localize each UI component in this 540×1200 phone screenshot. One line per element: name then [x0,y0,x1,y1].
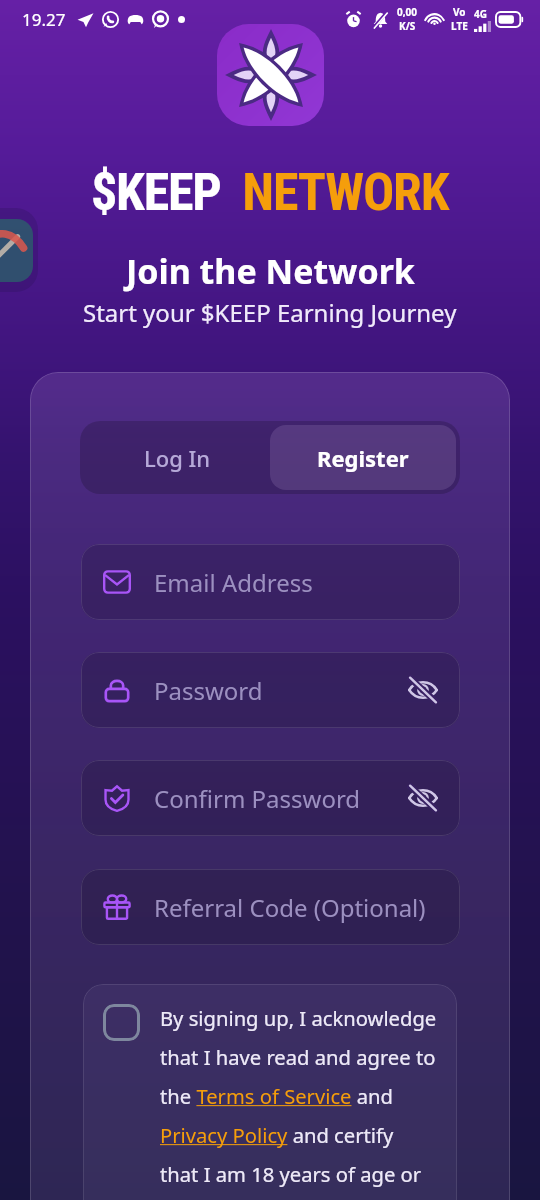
staticText: By signing up, I acknowledge that I have… [160,1004,442,1200]
button[interactable]: Accept terms [103,1004,140,1041]
staticText: LTE [451,19,468,33]
staticText: Email Address [154,566,313,599]
button[interactable]: Mining app shortcut [0,208,38,292]
staticText: Password [154,674,263,707]
staticText: K/S [399,19,416,33]
staticText: $KEEP NETWORK [91,162,449,223]
staticText: Start your $KEEP Earning Journey [83,296,457,329]
staticText: Register [317,443,409,473]
staticText: Vo [453,5,466,19]
button[interactable]: Referral Code (Optional) [81,869,460,945]
button[interactable]: Log In [84,425,270,490]
button[interactable]: Confirm Password [81,760,460,836]
staticText: 0,00 [397,5,418,19]
button[interactable]: Accept terms [83,984,457,1200]
button[interactable]: Password [81,652,460,728]
staticText: Join the Network [126,248,415,294]
button[interactable]: KEEP Network logo [217,24,324,126]
button[interactable]: Show password [406,781,440,815]
staticText: 19.27 [22,8,66,31]
staticText: Log In [144,443,211,473]
button[interactable]: Email Address [81,544,460,620]
staticText: Referral Code (Optional) [154,891,426,924]
button[interactable]: Show password [406,673,440,707]
staticText: Confirm Password [154,782,361,815]
staticText: 4G [474,7,487,21]
button[interactable]: Register [270,425,456,490]
